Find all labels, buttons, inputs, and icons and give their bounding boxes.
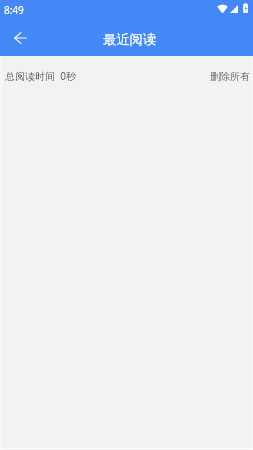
staticText: 总阅读时间 0秒 <box>5 69 76 83</box>
button[interactable]: 删除所有 <box>202 62 253 91</box>
button[interactable]: Back <box>3 21 37 55</box>
staticText: 最近阅读 <box>103 31 156 48</box>
staticText: 删除所有 <box>210 70 250 83</box>
staticText: 8:49 <box>4 3 24 17</box>
